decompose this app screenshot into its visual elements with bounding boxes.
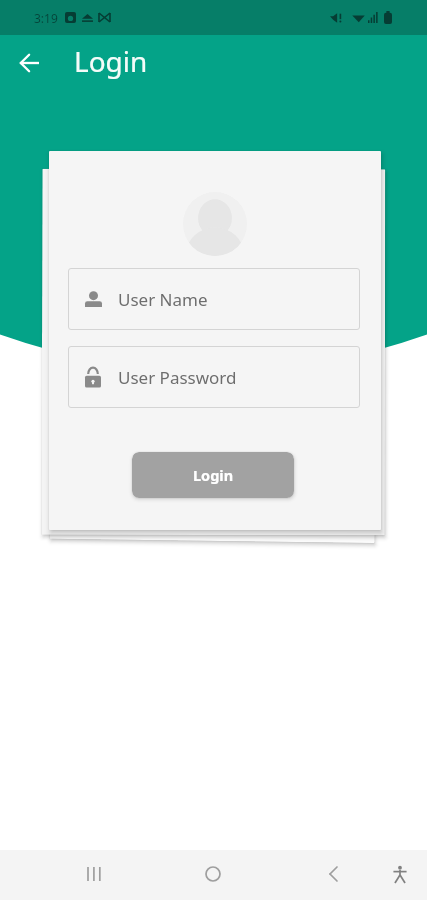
staticText: User Name — [118, 288, 208, 311]
button[interactable]: User Password — [68, 346, 360, 408]
button[interactable]: Accessibility — [376, 850, 424, 898]
staticText: 3:19 — [34, 10, 58, 26]
staticText: Login — [74, 42, 148, 80]
button[interactable]: User Name — [68, 268, 360, 330]
button[interactable]: Login — [132, 452, 294, 498]
staticText: User Password — [118, 366, 237, 389]
button[interactable]: Recent apps — [69, 850, 117, 898]
button[interactable]: Back — [7, 40, 52, 85]
button[interactable]: Back — [309, 850, 357, 898]
staticText: Login — [193, 465, 234, 485]
button[interactable]: Home — [189, 850, 237, 898]
